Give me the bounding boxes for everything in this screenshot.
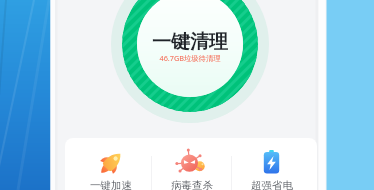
button[interactable]: 超强省电 xyxy=(232,138,311,190)
button[interactable]: 一键加速 xyxy=(71,138,151,190)
staticText: 一键清理 xyxy=(152,30,228,54)
staticText: 一键加速 xyxy=(90,179,132,190)
button[interactable]: 一键清理 xyxy=(137,0,243,97)
staticText: 病毒查杀 xyxy=(171,179,213,190)
button[interactable]: 病毒查杀 xyxy=(152,138,231,190)
staticText: 46.7GB垃圾待清理 xyxy=(159,53,221,63)
staticText: 超强省电 xyxy=(251,179,293,190)
